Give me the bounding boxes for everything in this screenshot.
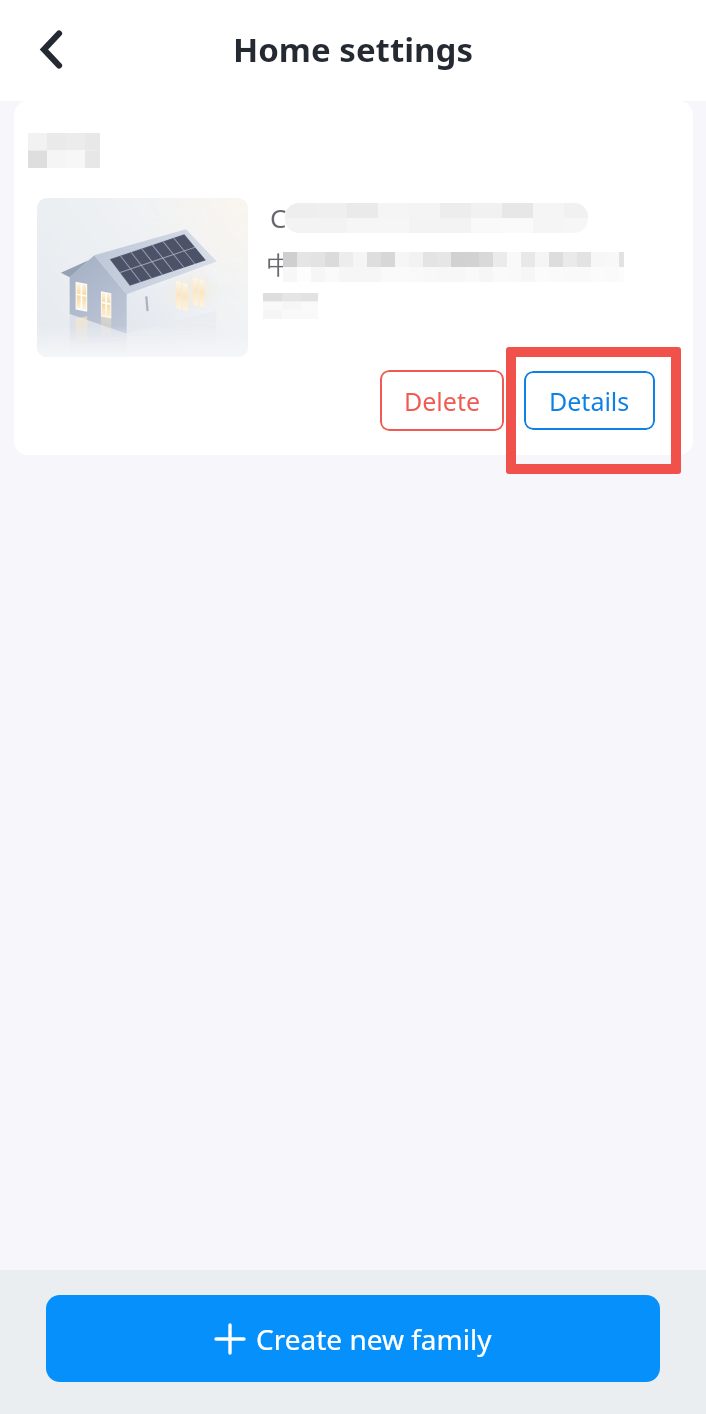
button[interactable]: Details — [524, 371, 655, 430]
button[interactable]: Delete — [380, 370, 504, 431]
staticText: Home settings — [233, 27, 473, 72]
button[interactable]: Create new family — [46, 1295, 660, 1382]
staticText: C — [270, 200, 287, 235]
staticText: Details — [549, 384, 630, 418]
staticText: Delete — [404, 384, 481, 418]
staticText: 中 — [267, 250, 292, 281]
button[interactable]: Back — [20, 18, 83, 81]
staticText: Create new family — [256, 1320, 492, 1358]
button[interactable]: Home photo — [37, 198, 248, 357]
